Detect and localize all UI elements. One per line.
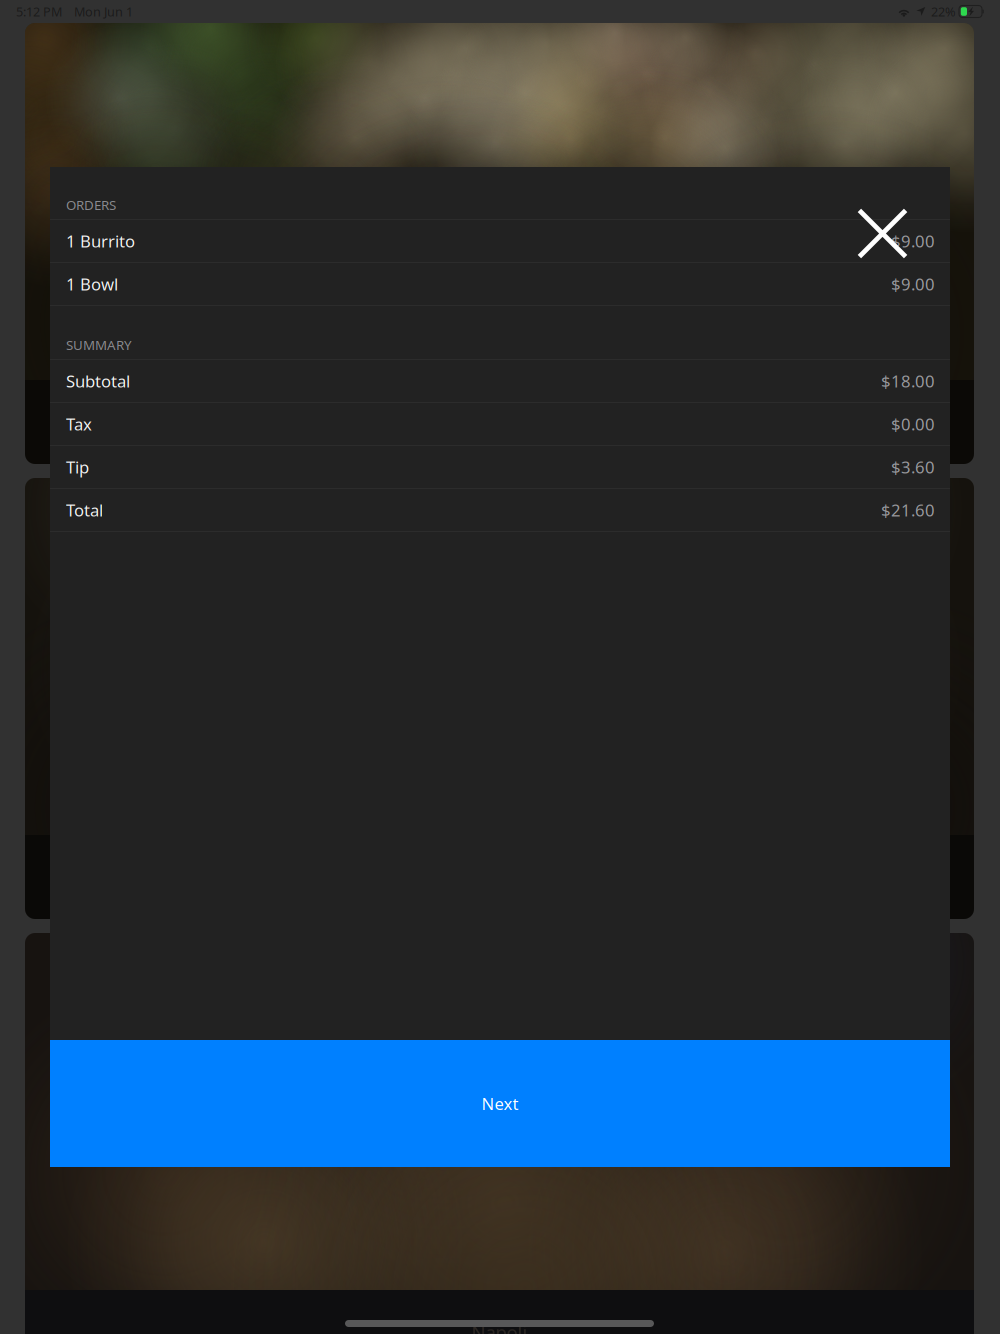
staticText: Mon Jun 1: [74, 3, 133, 20]
button[interactable]: Tacos El Sol: [25, 23, 974, 464]
staticText: ORDERS: [66, 196, 116, 214]
staticText: 5:12 PM: [16, 3, 62, 20]
staticText: Napoli: [471, 1319, 527, 1334]
button[interactable]: Sweetgreen: [25, 478, 974, 919]
staticText: Tax: [66, 413, 92, 435]
staticText: Tip: [66, 456, 89, 478]
button[interactable]: 1 Burrito: [50, 220, 950, 263]
staticText: SUMMARY: [66, 336, 132, 354]
button[interactable]: Subtotal: [50, 360, 950, 403]
staticText: Next: [481, 1092, 518, 1115]
staticText: $3.60: [891, 456, 935, 478]
button[interactable]: Close: [857, 208, 908, 259]
button[interactable]: Total: [50, 489, 950, 532]
staticText: $9.00: [891, 273, 935, 295]
staticText: $21.60: [881, 499, 935, 521]
staticText: 1 Bowl: [66, 273, 118, 295]
staticText: 1 Burrito: [66, 230, 135, 252]
button[interactable]: Next: [50, 1040, 950, 1167]
staticText: Subtotal: [66, 370, 130, 392]
staticText: 22%: [931, 3, 956, 20]
button[interactable]: 1 Bowl: [50, 263, 950, 306]
staticText: $9.00: [891, 230, 935, 252]
button[interactable]: Tip: [50, 446, 950, 489]
staticText: $18.00: [881, 370, 935, 392]
button[interactable]: Tax: [50, 403, 950, 446]
staticText: Total: [66, 499, 103, 521]
staticText: $0.00: [891, 413, 935, 435]
button[interactable]: Napoli: [25, 933, 974, 1334]
